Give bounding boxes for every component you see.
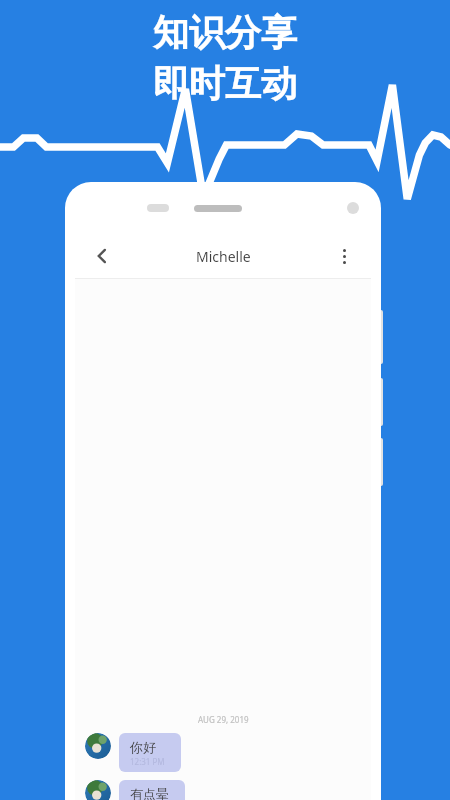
staticText: Michelle bbox=[196, 247, 251, 266]
staticText: 有点晕 bbox=[130, 786, 169, 800]
button[interactable]: Back bbox=[85, 239, 119, 273]
button[interactable]: More options bbox=[327, 239, 361, 273]
staticText: 12:31 PM bbox=[130, 756, 165, 767]
button[interactable]: 你好 bbox=[119, 733, 181, 772]
staticText: 知识分享 bbox=[153, 10, 297, 55]
staticText: 你好 bbox=[130, 739, 156, 755]
staticText: 即时互动 bbox=[153, 61, 297, 106]
button[interactable]: 有点晕 bbox=[119, 780, 185, 800]
staticText: AUG 29, 2019 bbox=[198, 714, 249, 725]
